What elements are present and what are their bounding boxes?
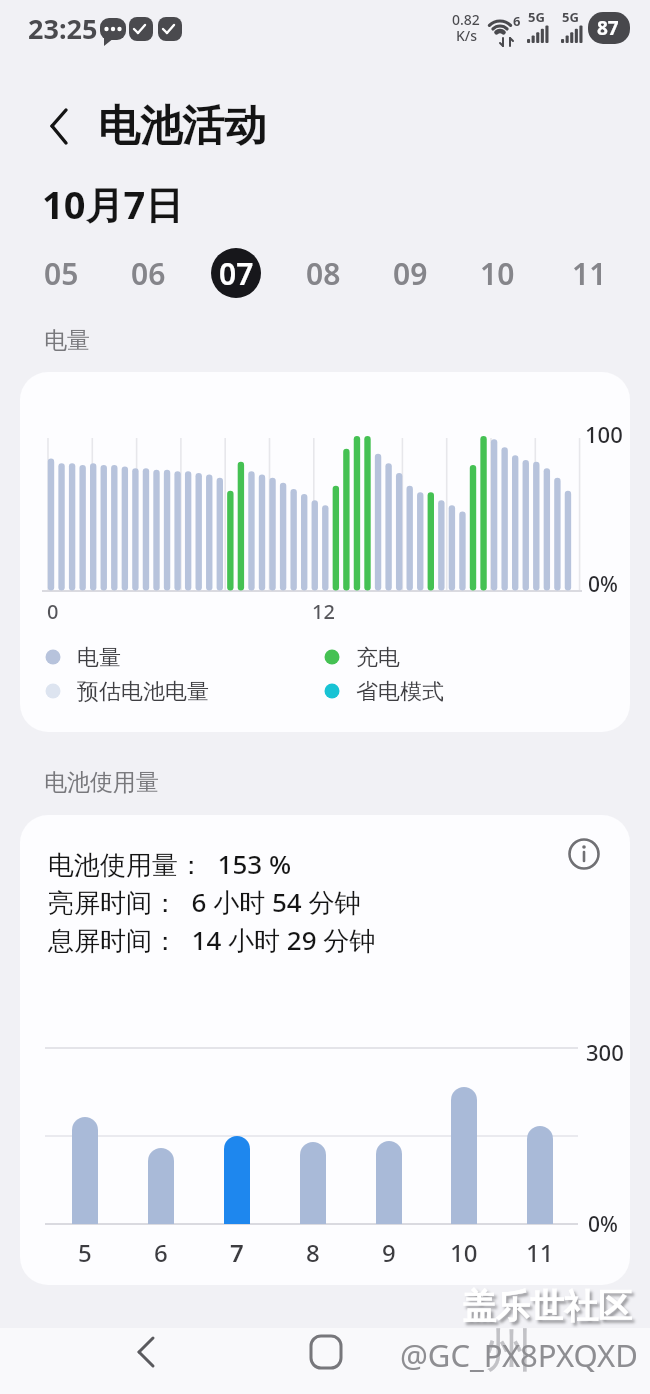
staticText: 电池使用量： 153 %: [48, 846, 292, 882]
staticText: 10月7日: [42, 178, 184, 230]
staticText: 州: [486, 1322, 532, 1380]
staticText: 省电模式: [356, 678, 444, 706]
staticText: 0: [47, 598, 59, 625]
staticText: 05: [44, 253, 79, 294]
staticText: 盖乐世社区: [462, 1285, 632, 1328]
staticText: 亮屏时间： 6 小时 54 分钟: [48, 884, 361, 920]
staticText: 23:25: [28, 10, 98, 47]
staticText: 11: [526, 1236, 554, 1264]
staticText: 09: [393, 253, 428, 294]
staticText: 100: [585, 419, 623, 449]
button[interactable]: 05: [36, 248, 86, 298]
staticText: 7: [230, 1236, 244, 1264]
button[interactable]: 06: [123, 248, 173, 298]
staticText: K/s: [456, 26, 478, 45]
button[interactable]: [296, 1322, 356, 1382]
staticText: 9: [382, 1236, 396, 1264]
staticText: 8: [306, 1236, 320, 1264]
staticText: 5: [78, 1236, 92, 1264]
staticText: 10: [480, 253, 515, 294]
staticText: 87: [597, 15, 619, 41]
button[interactable]: 08: [298, 248, 348, 298]
staticText: 07: [219, 253, 254, 294]
staticText: 电池活动: [98, 100, 266, 153]
staticText: 12: [312, 598, 335, 625]
button[interactable]: 10: [472, 248, 522, 298]
button[interactable]: [116, 1322, 176, 1382]
staticText: 08: [306, 253, 341, 294]
staticText: 300: [586, 1037, 624, 1067]
button[interactable]: 09: [385, 248, 435, 298]
staticText: 0%: [588, 1210, 618, 1239]
staticText: 电量: [77, 644, 121, 672]
staticText: 预估电池电量: [77, 678, 209, 706]
staticText: 6: [154, 1236, 168, 1264]
staticText: 6: [513, 12, 521, 30]
staticText: 5G: [562, 8, 579, 26]
staticText: 息屏时间： 14 小时 29 分钟: [48, 922, 376, 958]
staticText: @GC_PX8PXQXD: [400, 1334, 638, 1376]
button[interactable]: 07: [211, 248, 261, 298]
button[interactable]: 11: [564, 248, 614, 298]
staticText: 充电: [356, 644, 400, 672]
staticText: 电池使用量: [44, 768, 159, 797]
staticText: 0.82: [452, 10, 480, 29]
button[interactable]: [36, 104, 84, 152]
staticText: 06: [131, 253, 166, 294]
staticText: 0%: [588, 570, 618, 599]
button[interactable]: [562, 832, 606, 876]
staticText: 5G: [528, 8, 545, 26]
staticText: 电量: [44, 326, 90, 355]
staticText: 11: [572, 253, 607, 294]
staticText: 10: [450, 1236, 478, 1264]
